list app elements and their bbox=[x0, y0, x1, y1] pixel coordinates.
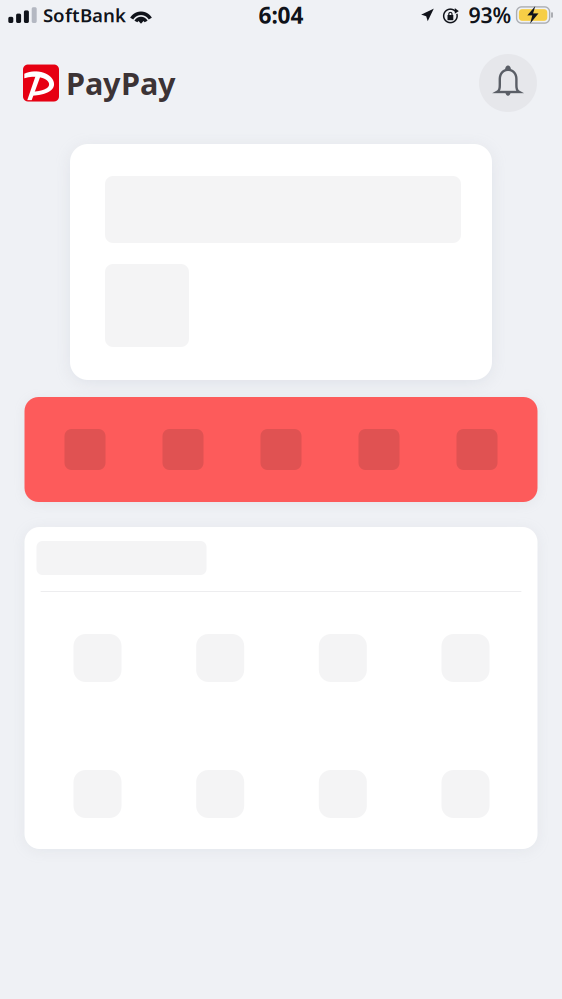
button[interactable]: Notifications bbox=[479, 54, 537, 112]
staticText: 93% bbox=[469, 1, 512, 29]
staticText: 6:04 bbox=[258, 0, 303, 30]
staticText: SoftBank bbox=[43, 3, 126, 27]
button[interactable]: Quick actions bbox=[24, 397, 537, 502]
staticText: PayPay bbox=[66, 63, 176, 103]
